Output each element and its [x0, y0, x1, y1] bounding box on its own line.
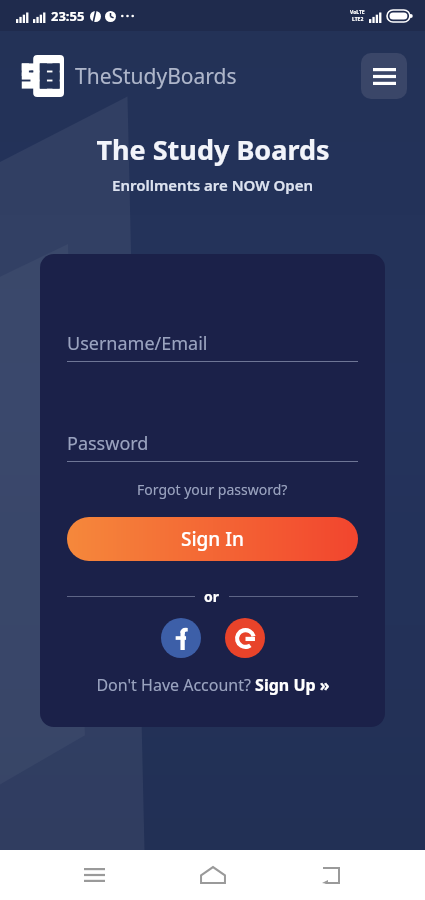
button[interactable]: Recent apps [70, 851, 118, 899]
staticText: The Study Boards [96, 131, 330, 168]
button[interactable]: Sign in with Google [225, 618, 265, 658]
staticText: Enrollments are NOW Open [112, 175, 313, 195]
button[interactable]: Username/Email [67, 331, 358, 362]
staticText: 23:55 [51, 7, 85, 25]
staticText: TheStudyBoards [75, 62, 237, 91]
button[interactable]: Sign In [67, 517, 358, 561]
staticText: Don't Have Account? Sign Up » [96, 674, 330, 696]
staticText: Forgot your password? [137, 480, 288, 499]
button[interactable]: Sign in with Facebook [161, 618, 201, 658]
staticText: or [204, 587, 220, 606]
button[interactable]: Back [307, 851, 355, 899]
staticText: Sign In [181, 526, 244, 552]
button[interactable]: Don't Have Account? Sign Up » [67, 674, 358, 696]
button[interactable]: Forgot your password? [67, 480, 358, 499]
staticText: LTE2 [352, 16, 364, 23]
button[interactable]: Home [189, 851, 237, 899]
staticText: VoLTE [350, 9, 365, 16]
staticText: Username/Email [67, 331, 208, 356]
button[interactable]: Password [67, 431, 358, 462]
staticText: Password [67, 431, 149, 456]
button[interactable]: Open menu [361, 53, 407, 99]
